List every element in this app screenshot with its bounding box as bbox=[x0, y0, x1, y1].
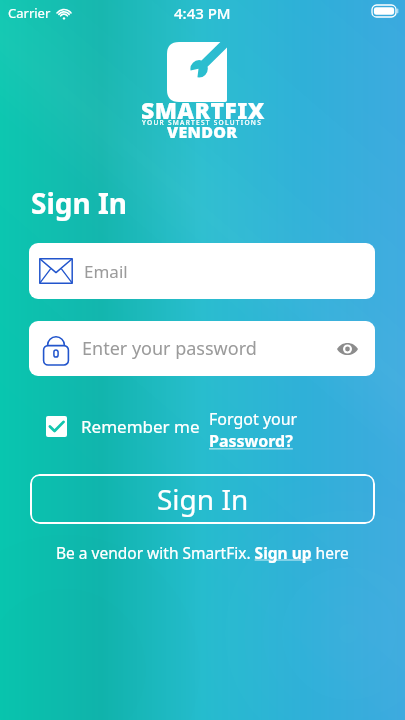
button[interactable]: Email bbox=[29, 243, 375, 299]
button[interactable]: Show password bbox=[332, 334, 362, 364]
staticText: Password? bbox=[209, 430, 293, 452]
staticText: Email bbox=[84, 260, 128, 283]
button[interactable]: Forgot your bbox=[209, 408, 298, 452]
staticText: Sign In bbox=[31, 184, 128, 222]
staticText: Enter your password bbox=[82, 336, 257, 361]
button[interactable]: Sign In bbox=[30, 474, 375, 524]
staticText: VENDOR bbox=[167, 121, 238, 143]
button[interactable]: Enter your password bbox=[29, 321, 375, 376]
button[interactable]: Remember me bbox=[46, 415, 200, 438]
staticText: 4:43 PM bbox=[174, 3, 231, 23]
staticText: Carrier bbox=[8, 4, 51, 22]
staticText: Forgot your bbox=[209, 408, 298, 430]
button[interactable]: Be a vendor with SmartFix. Sign up here bbox=[56, 542, 349, 563]
staticText: SMARTFIX bbox=[141, 94, 265, 125]
staticText: YOUR SMARTEST SOLUTIONS bbox=[142, 118, 263, 127]
staticText: Remember me bbox=[81, 415, 200, 438]
staticText: Sign In bbox=[157, 480, 249, 518]
